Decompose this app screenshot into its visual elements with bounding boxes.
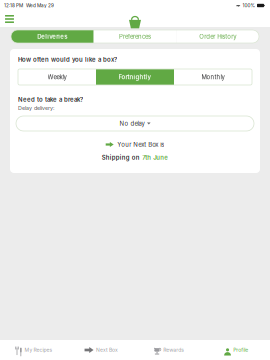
staticText: Weekly xyxy=(47,73,66,81)
button[interactable]: Rewards xyxy=(135,340,202,360)
staticText: Preferences xyxy=(119,33,151,40)
staticText: Profile xyxy=(233,347,248,353)
button[interactable]: Order History xyxy=(176,30,259,43)
button[interactable]: Deliveries xyxy=(11,30,94,43)
staticText: Delay delivery: xyxy=(18,105,55,111)
staticText: Shipping on xyxy=(102,154,140,161)
staticText: Monthly xyxy=(201,73,224,81)
button[interactable]: Profile xyxy=(202,340,270,360)
button[interactable]: Fortnightly xyxy=(96,69,174,85)
button[interactable]: My Recipes xyxy=(0,340,67,360)
button[interactable]: Preferences xyxy=(94,30,176,43)
staticText: 100% xyxy=(242,3,255,8)
staticText: 12:18 PM Wed May 29 xyxy=(4,3,54,8)
button[interactable]: No delay xyxy=(16,116,254,131)
staticText: Need to take a break? xyxy=(18,96,83,103)
staticText: Order History xyxy=(199,33,236,40)
button[interactable]: Monthly xyxy=(174,69,252,85)
button[interactable]: Menu xyxy=(0,11,20,26)
staticText: Deliveries xyxy=(37,33,67,40)
staticText: Your Next Box is xyxy=(117,141,164,148)
staticText: My Recipes xyxy=(24,347,52,353)
button[interactable]: Next Box xyxy=(67,340,135,360)
button[interactable]: Weekly xyxy=(18,69,96,85)
staticText: How often would you like a box? xyxy=(18,56,117,63)
staticText: Rewards xyxy=(163,347,184,353)
staticText: No delay xyxy=(119,120,144,127)
staticText: Fortnightly xyxy=(118,73,151,81)
staticText: Next Box xyxy=(96,347,118,353)
staticText: 7th June xyxy=(142,154,168,161)
